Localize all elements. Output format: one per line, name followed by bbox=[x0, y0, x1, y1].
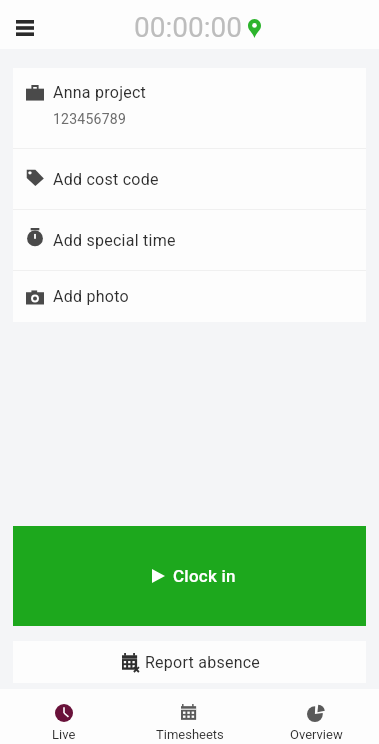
button[interactable]: Live bbox=[0, 689, 127, 744]
button[interactable]: Clock in bbox=[13, 526, 366, 626]
button[interactable]: Anna project bbox=[13, 68, 366, 148]
staticText: 123456789 bbox=[53, 111, 127, 127]
staticText: Add photo bbox=[53, 287, 129, 306]
button[interactable]: Add cost code bbox=[13, 149, 366, 209]
button[interactable]: Report absence bbox=[13, 641, 366, 683]
button[interactable]: Add special time bbox=[13, 210, 366, 270]
staticText: 00:00:00 bbox=[134, 11, 242, 44]
staticText: Live bbox=[52, 727, 76, 742]
button[interactable]: Menu bbox=[5, 5, 45, 45]
staticText: Timesheets bbox=[156, 727, 224, 742]
button[interactable]: Overview bbox=[253, 689, 379, 744]
staticText: Report absence bbox=[145, 653, 261, 672]
staticText: Anna project bbox=[53, 83, 147, 102]
button[interactable]: Timesheets bbox=[127, 689, 253, 744]
staticText: Overview bbox=[290, 727, 343, 742]
button[interactable]: Add photo bbox=[13, 271, 366, 322]
staticText: Add special time bbox=[53, 231, 176, 250]
staticText: Add cost code bbox=[53, 170, 159, 189]
staticText: Clock in bbox=[173, 566, 236, 586]
